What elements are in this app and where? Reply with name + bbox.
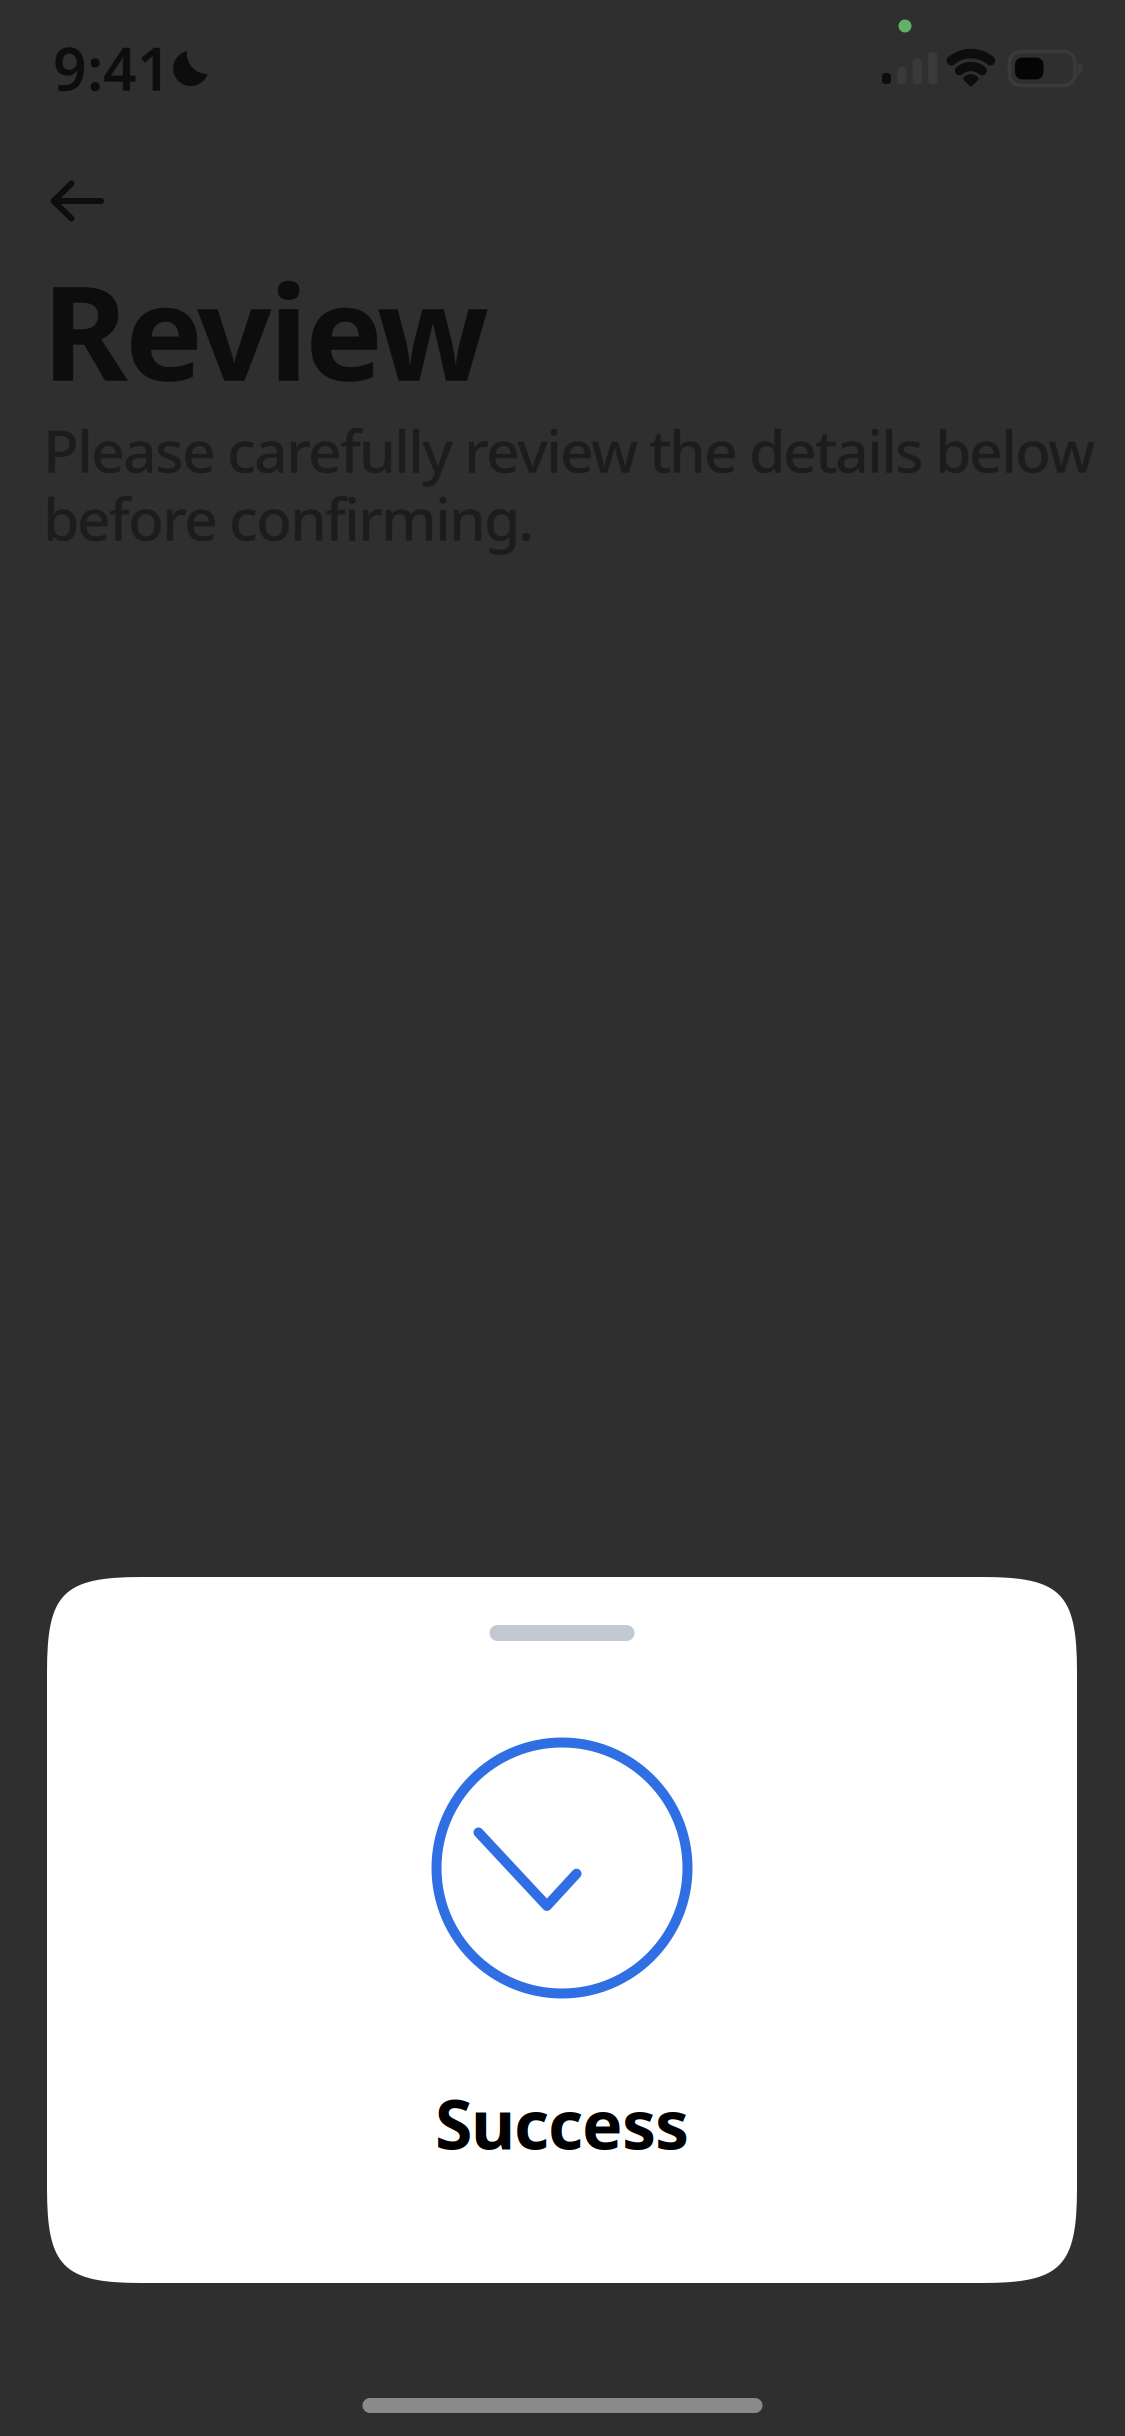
staticText: Review (42, 243, 489, 417)
staticText: before confirming. (43, 479, 534, 557)
staticText: Please carefully review the details belo… (43, 411, 1095, 489)
staticText: 9:41 (53, 29, 171, 107)
staticText: Success (435, 2078, 689, 2168)
button[interactable]: Back (47, 175, 107, 227)
